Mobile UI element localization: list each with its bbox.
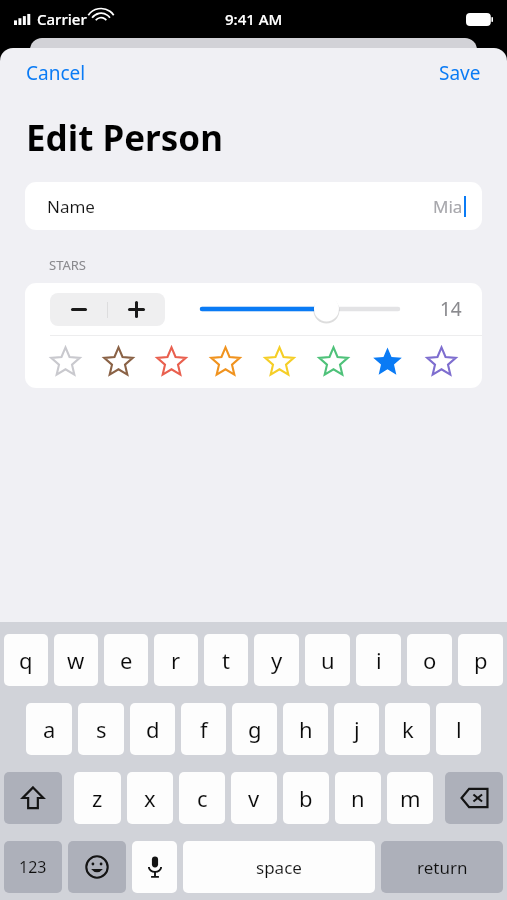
staticText: a (43, 714, 56, 744)
button[interactable]: Star (252, 336, 306, 388)
button[interactable]: b (283, 772, 329, 824)
staticText: 123 (19, 856, 47, 878)
button[interactable]: Name (25, 182, 482, 230)
button[interactable]: a (26, 703, 72, 755)
button[interactable]: f (181, 703, 226, 755)
staticText: Save (439, 60, 481, 86)
button[interactable]: space (183, 841, 375, 893)
staticText: Mia (433, 195, 463, 218)
staticText: u (321, 645, 335, 675)
staticText: e (120, 645, 133, 675)
button[interactable]: Save (413, 52, 507, 94)
button[interactable]: Star (145, 336, 198, 388)
staticText: x (144, 783, 156, 813)
staticText: l (456, 714, 462, 744)
staticText: p (474, 645, 488, 675)
button[interactable]: Dictation (132, 841, 177, 893)
button[interactable]: Cancel (0, 52, 112, 94)
button[interactable]: x (127, 772, 173, 824)
button[interactable]: Star (360, 336, 414, 388)
staticText: y (271, 645, 283, 675)
button[interactable]: y (254, 634, 299, 686)
button[interactable]: r (154, 634, 198, 686)
button[interactable]: e (104, 634, 148, 686)
button[interactable]: h (283, 703, 328, 755)
staticText: Name (47, 195, 95, 218)
button[interactable]: 123 (4, 841, 62, 893)
button[interactable]: Backspace (445, 772, 503, 824)
staticText: g (248, 714, 262, 744)
button[interactable]: Stars slider (193, 292, 407, 326)
button[interactable]: Star (92, 336, 145, 388)
button[interactable]: j (334, 703, 379, 755)
staticText: STARS (49, 256, 86, 274)
button[interactable]: n (335, 772, 381, 824)
button[interactable]: o (407, 634, 452, 686)
button[interactable]: u (305, 634, 350, 686)
staticText: i (376, 645, 382, 675)
staticText: k (402, 714, 414, 744)
button[interactable]: s (78, 703, 124, 755)
staticText: Cancel (26, 60, 86, 86)
staticText: r (171, 645, 181, 675)
button[interactable]: Decrement (50, 293, 107, 326)
button[interactable]: z (74, 772, 121, 824)
button[interactable]: q (4, 634, 48, 686)
staticText: 9:41 AM (225, 9, 283, 29)
button[interactable]: t (204, 634, 248, 686)
staticText: n (351, 783, 365, 813)
button[interactable]: w (54, 634, 98, 686)
button[interactable]: Star (198, 336, 252, 388)
staticText: q (19, 645, 33, 675)
button[interactable]: Star (39, 336, 92, 388)
staticText: w (67, 645, 85, 675)
button[interactable]: Shift (4, 772, 62, 824)
button[interactable]: i (356, 634, 401, 686)
staticText: z (92, 783, 103, 813)
button[interactable]: Star (414, 336, 468, 388)
button[interactable]: m (387, 772, 433, 824)
staticText: Carrier (37, 9, 87, 29)
button[interactable]: g (232, 703, 277, 755)
button[interactable]: v (231, 772, 277, 824)
button[interactable]: l (436, 703, 481, 755)
staticText: m (400, 783, 421, 813)
staticText: space (256, 856, 302, 879)
staticText: 14 (440, 296, 462, 322)
button[interactable]: c (179, 772, 225, 824)
staticText: Edit Person (26, 114, 223, 162)
staticText: j (354, 714, 360, 744)
staticText: o (423, 645, 437, 675)
staticText: return (417, 856, 468, 879)
button[interactable]: return (381, 841, 503, 893)
staticText: h (299, 714, 313, 744)
staticText: d (146, 714, 160, 744)
button[interactable]: k (385, 703, 430, 755)
staticText: s (96, 714, 107, 744)
button[interactable]: Increment (108, 293, 165, 326)
staticText: b (299, 783, 313, 813)
staticText: t (222, 645, 230, 675)
staticText: c (197, 783, 208, 813)
staticText: v (248, 783, 260, 813)
button[interactable]: d (130, 703, 175, 755)
button[interactable]: Star (306, 336, 360, 388)
button[interactable]: p (458, 634, 503, 686)
button[interactable]: Emoji (68, 841, 126, 893)
staticText: f (200, 714, 208, 744)
